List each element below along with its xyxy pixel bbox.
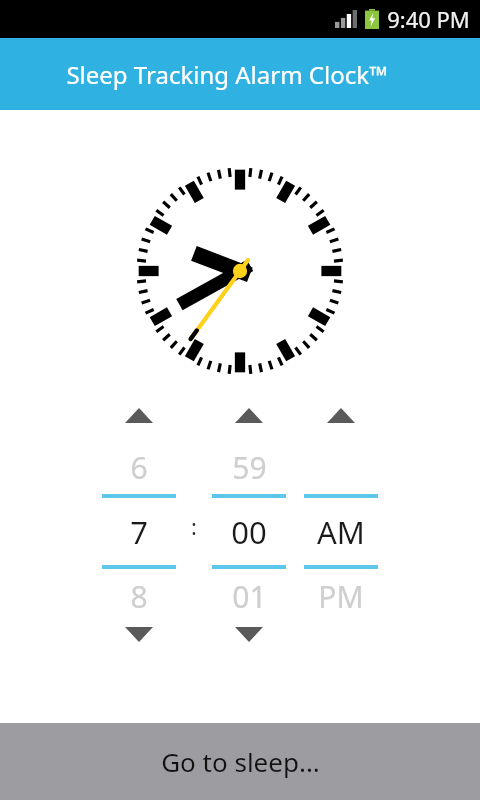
staticText: 9:40 PM bbox=[387, 4, 470, 34]
staticText: PM bbox=[318, 576, 364, 617]
staticText: : bbox=[191, 511, 197, 541]
button[interactable]: Go to sleep... bbox=[0, 723, 480, 800]
button[interactable]: 00 bbox=[212, 498, 286, 565]
staticText: 8 bbox=[130, 576, 148, 617]
button[interactable]: Decrease Hour bbox=[102, 619, 176, 649]
staticText: 00 bbox=[231, 511, 267, 553]
staticText: 59 bbox=[232, 447, 267, 488]
staticText: 01 bbox=[232, 576, 267, 617]
button[interactable]: AM bbox=[304, 498, 378, 565]
staticText: AM bbox=[317, 511, 365, 553]
staticText: Go to sleep... bbox=[161, 744, 320, 779]
button[interactable]: Increase Minute bbox=[212, 400, 286, 430]
staticText: 6 bbox=[130, 447, 148, 488]
button[interactable]: Increase AM PM bbox=[304, 400, 378, 430]
button[interactable]: Increase Hour bbox=[102, 400, 176, 430]
other: Analog clock bbox=[135, 166, 345, 376]
staticText: Sleep Tracking Alarm Clock™ bbox=[66, 58, 388, 91]
button[interactable]: 7 bbox=[102, 498, 176, 565]
staticText: 7 bbox=[130, 511, 148, 553]
button[interactable]: Decrease Minute bbox=[212, 619, 286, 649]
